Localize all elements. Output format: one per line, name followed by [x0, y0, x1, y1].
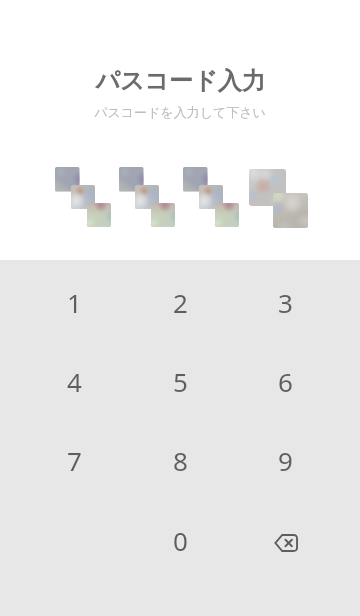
button[interactable]: 7	[30, 432, 118, 488]
staticText: 6	[278, 364, 293, 399]
button[interactable]: Delete	[242, 515, 330, 571]
button[interactable]: 6	[241, 353, 329, 409]
staticText: 9	[278, 443, 293, 478]
staticText: 2	[173, 285, 188, 320]
staticText: 8	[173, 443, 188, 478]
button[interactable]: 4	[30, 353, 118, 409]
button[interactable]: 3	[241, 274, 329, 330]
button[interactable]: 5	[136, 353, 224, 409]
staticText: 3	[278, 285, 293, 320]
button[interactable]: 8	[136, 432, 224, 488]
button[interactable]: 0	[136, 512, 224, 568]
staticText: 4	[67, 364, 82, 399]
staticText: 1	[67, 285, 82, 320]
staticText: パスコード入力	[95, 66, 266, 96]
button[interactable]: 1	[30, 274, 118, 330]
staticText: 7	[67, 443, 82, 478]
staticText: 5	[173, 364, 188, 399]
staticText: パスコードを入力して下さい	[94, 104, 266, 120]
staticText: 0	[173, 523, 188, 558]
button[interactable]: 9	[241, 432, 329, 488]
button[interactable]: 2	[136, 274, 224, 330]
